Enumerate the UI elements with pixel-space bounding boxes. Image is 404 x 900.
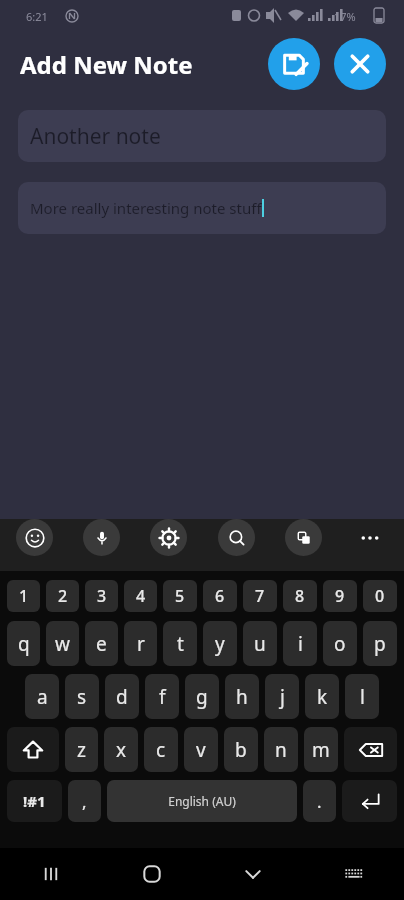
- button[interactable]: ,: [68, 780, 101, 822]
- staticText: English (AU): [168, 793, 236, 809]
- staticText: More really interesting note stuff: [30, 198, 262, 218]
- button[interactable]: v: [184, 727, 218, 772]
- button[interactable]: l: [345, 674, 379, 719]
- button[interactable]: 2: [46, 580, 79, 612]
- staticText: m: [312, 737, 330, 763]
- staticText: 2: [58, 585, 68, 607]
- button[interactable]: g: [185, 674, 219, 719]
- button[interactable]: j: [265, 674, 299, 719]
- button[interactable]: x: [104, 727, 138, 772]
- button[interactable]: Settings: [150, 519, 187, 556]
- button[interactable]: Close: [334, 38, 386, 90]
- staticText: Add New Note: [20, 48, 193, 81]
- staticText: 4: [136, 585, 146, 607]
- staticText: 8: [295, 585, 305, 607]
- staticText: d: [116, 684, 128, 710]
- button[interactable]: Save note: [268, 38, 320, 90]
- staticText: b: [235, 737, 247, 763]
- staticText: w: [55, 631, 70, 657]
- button[interactable]: 6: [203, 580, 237, 612]
- button[interactable]: h: [225, 674, 259, 719]
- staticText: n: [275, 737, 287, 763]
- button[interactable]: !#1: [7, 780, 62, 822]
- button[interactable]: f: [145, 674, 179, 719]
- button[interactable]: 8: [283, 580, 317, 612]
- staticText: r: [137, 631, 145, 657]
- button[interactable]: y: [203, 621, 237, 666]
- button[interactable]: Shift: [7, 727, 59, 772]
- staticText: o: [334, 631, 346, 657]
- button[interactable]: Home: [101, 848, 202, 900]
- button[interactable]: More options: [352, 520, 388, 556]
- staticText: 7: [255, 585, 265, 607]
- staticText: 6:21: [26, 9, 48, 24]
- staticText: 0: [375, 585, 385, 607]
- staticText: !#1: [23, 791, 46, 811]
- button[interactable]: e: [85, 621, 118, 666]
- button[interactable]: c: [144, 727, 178, 772]
- button[interactable]: k: [305, 674, 339, 719]
- button[interactable]: Translate: [285, 519, 322, 556]
- staticText: z: [77, 737, 86, 763]
- button[interactable]: p: [363, 621, 397, 666]
- button[interactable]: 9: [323, 580, 357, 612]
- staticText: c: [156, 737, 166, 763]
- button[interactable]: m: [304, 727, 338, 772]
- staticText: 6: [215, 585, 225, 607]
- button[interactable]: 4: [124, 580, 157, 612]
- button[interactable]: Emoji: [16, 519, 53, 556]
- button[interactable]: .: [303, 780, 336, 822]
- staticText: y: [215, 631, 225, 657]
- button[interactable]: 0: [363, 580, 397, 612]
- staticText: .: [317, 790, 322, 813]
- staticText: s: [77, 684, 87, 710]
- staticText: 1: [19, 585, 29, 607]
- button[interactable]: Enter: [342, 780, 397, 822]
- button[interactable]: n: [264, 727, 298, 772]
- button[interactable]: Recent apps: [0, 848, 101, 900]
- button[interactable]: More really interesting note stuff: [18, 182, 386, 234]
- button[interactable]: Search: [218, 519, 255, 556]
- staticText: a: [37, 684, 48, 710]
- staticText: x: [116, 737, 127, 763]
- staticText: 5: [175, 585, 185, 607]
- staticText: u: [254, 631, 266, 657]
- staticText: v: [196, 737, 206, 763]
- staticText: ,: [82, 790, 87, 813]
- button[interactable]: t: [163, 621, 197, 666]
- button[interactable]: 7: [243, 580, 277, 612]
- button[interactable]: Another note: [18, 110, 386, 162]
- staticText: f: [159, 684, 166, 710]
- button[interactable]: o: [323, 621, 357, 666]
- button[interactable]: w: [46, 621, 79, 666]
- button[interactable]: s: [65, 674, 99, 719]
- staticText: 3: [97, 585, 107, 607]
- staticText: e: [96, 631, 107, 657]
- button[interactable]: i: [283, 621, 317, 666]
- button[interactable]: q: [7, 621, 40, 666]
- button[interactable]: Space: [107, 780, 297, 822]
- staticText: 9: [335, 585, 345, 607]
- button[interactable]: r: [124, 621, 157, 666]
- button[interactable]: z: [65, 727, 98, 772]
- button[interactable]: b: [224, 727, 258, 772]
- staticText: k: [317, 684, 328, 710]
- button[interactable]: Change keyboard: [303, 848, 404, 900]
- staticText: g: [196, 684, 208, 710]
- staticText: i: [298, 631, 303, 657]
- staticText: 17%: [334, 9, 356, 24]
- button[interactable]: Hide keyboard: [202, 848, 303, 900]
- staticText: h: [236, 684, 248, 710]
- button[interactable]: Backspace: [344, 727, 397, 772]
- button[interactable]: 1: [7, 580, 40, 612]
- button[interactable]: 3: [85, 580, 118, 612]
- staticText: Another note: [30, 122, 161, 151]
- staticText: l: [360, 684, 365, 710]
- button[interactable]: u: [243, 621, 277, 666]
- button[interactable]: Voice input: [83, 519, 120, 556]
- staticText: p: [374, 631, 386, 657]
- button[interactable]: d: [105, 674, 139, 719]
- staticText: j: [280, 684, 285, 710]
- button[interactable]: 5: [163, 580, 197, 612]
- button[interactable]: a: [25, 674, 59, 719]
